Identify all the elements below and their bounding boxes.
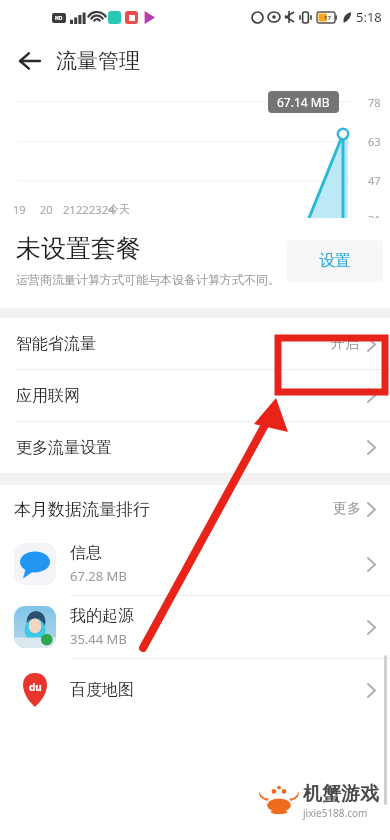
staticText: 信息 (70, 543, 102, 563)
staticText: 开启 (331, 335, 359, 353)
button[interactable]: 应用联网 (0, 370, 390, 421)
staticText: 流量管理 (56, 48, 140, 74)
staticText: 47 (368, 173, 381, 188)
staticText: 21 (63, 202, 76, 217)
staticText: jixie5188.com (303, 806, 368, 820)
staticText: 63 (368, 134, 381, 149)
staticText: HD (55, 15, 63, 22)
staticText: 未设置套餐 (16, 233, 141, 264)
button[interactable]: 智能省流量 (0, 318, 390, 369)
staticText: 31 (368, 212, 381, 225)
staticText: 67.14 MB (277, 94, 330, 110)
button[interactable]: 我的起源 (0, 596, 390, 658)
staticText: 机蟹游戏 (303, 782, 379, 806)
staticText: 19 (13, 202, 26, 217)
staticText: 5:18 (356, 8, 382, 26)
button[interactable]: du (0, 659, 390, 721)
staticText: 24 (102, 202, 115, 217)
staticText: 应用联网 (16, 386, 80, 406)
staticText: 20 (40, 202, 53, 217)
staticText: 23 (89, 202, 102, 217)
staticText: 更多流量设置 (16, 438, 112, 458)
staticText: 78 (368, 95, 381, 110)
staticText: 百度地图 (70, 680, 134, 700)
staticText: 运营商流量计算方式可能与本设备计算方式不同。 (16, 272, 280, 287)
button[interactable]: 设置 (287, 240, 383, 282)
button[interactable]: 返回 (8, 39, 52, 83)
staticText: 67.28 MB (70, 567, 127, 585)
staticText: 设置 (319, 251, 351, 271)
staticText: 22 (76, 202, 89, 217)
button[interactable]: 本月数据流量排行 (0, 485, 390, 533)
staticText: 今天 (108, 202, 130, 216)
staticText: 我的起源 (70, 606, 134, 626)
staticText: 智能省流量 (16, 334, 96, 354)
staticText: 17 (324, 14, 331, 22)
button[interactable]: 更多流量设置 (0, 422, 390, 473)
button[interactable]: 信息 (0, 533, 390, 595)
staticText: 更多 (333, 500, 361, 518)
staticText: 本月数据流量排行 (14, 499, 150, 520)
staticText: du (29, 680, 42, 694)
staticText: 35.44 MB (70, 630, 127, 648)
